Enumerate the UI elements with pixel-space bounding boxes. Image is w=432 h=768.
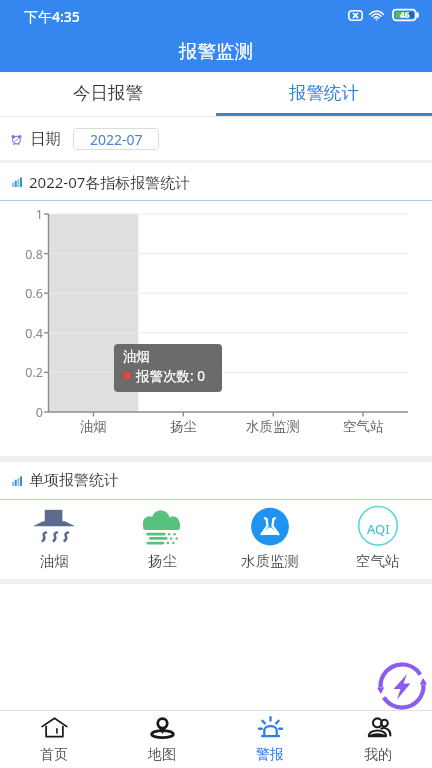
staticText: 2022-07各指标报警统计 [29,172,191,192]
staticText: 0.6 [0,285,43,302]
staticText: 地图 [148,746,176,764]
button[interactable]: AQI [324,509,432,569]
staticText: 扬尘 [170,418,197,435]
staticText: 扬尘 [148,552,177,570]
staticText: 报警统计 [289,82,359,104]
staticText: AQI [367,520,390,538]
button[interactable]: 我的 [324,711,432,768]
button[interactable]: 今日报警 [0,72,216,116]
staticText: 0.8 [0,246,43,263]
button[interactable]: Refresh [377,661,427,711]
button[interactable]: 扬尘 [108,509,216,569]
staticText: 我的 [364,746,392,764]
staticText: 单项报警统计 [29,471,119,490]
button[interactable]: 首页 [0,711,108,768]
staticText: 空气站 [343,418,384,435]
staticText: 1 [0,206,43,223]
staticText: 油烟 [123,348,150,365]
staticText: 首页 [40,746,68,764]
staticText: 水质监测 [246,418,300,435]
staticText: 水质监测 [241,552,299,570]
button[interactable]: 油烟 [0,509,108,569]
staticText: 油烟 [80,418,107,435]
staticText: 0.2 [0,364,43,381]
staticText: 空气站 [356,552,400,570]
button[interactable]: 水质监测 [216,509,324,569]
staticText: 2022-07 [90,130,143,149]
staticText: 日期 [30,129,61,149]
staticText: 报警监测 [179,40,253,63]
staticText: 今日报警 [73,82,143,104]
button[interactable]: 报警统计 [216,72,432,116]
staticText: 警报 [256,746,284,764]
staticText: 下午4:35 [24,7,80,26]
staticText: 油烟 [40,552,69,570]
button[interactable]: 地图 [108,711,216,768]
staticText: 报警次数: 0 [136,367,205,385]
button[interactable]: 警报 [216,711,324,768]
staticText: 46 [400,9,410,21]
button[interactable]: 2022-07 [73,128,159,150]
staticText: 0 [0,404,43,421]
staticText: 0.4 [0,325,43,342]
